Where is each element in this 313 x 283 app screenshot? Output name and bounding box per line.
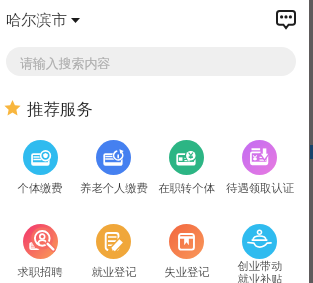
staticText: 请输入搜索内容: [20, 56, 111, 72]
staticText: 求职招聘: [17, 265, 63, 279]
staticText: 个体缴费: [17, 181, 63, 195]
staticText: 养老个人缴费: [80, 181, 148, 195]
staticText: 失业登记: [164, 265, 210, 279]
staticText: 创业带动 就业补贴: [237, 259, 283, 283]
button[interactable]: 失业登记: [150, 224, 223, 279]
button[interactable]: 在职转个体: [150, 140, 223, 195]
staticText: 哈尔滨市: [6, 10, 67, 28]
staticText: 待遇领取认证: [226, 181, 294, 195]
button[interactable]: 创业带动 就业补贴: [223, 224, 296, 283]
staticText: 在职转个体: [158, 181, 215, 195]
staticText: 推荐服务: [27, 99, 93, 117]
button[interactable]: 就业登记: [77, 224, 150, 279]
button[interactable]: 请输入搜索内容: [6, 47, 296, 76]
button[interactable]: 个体缴费: [3, 140, 77, 195]
button[interactable]: 推荐服务: [4, 99, 93, 117]
button[interactable]: 待遇领取认证: [223, 140, 296, 195]
button[interactable]: 哈尔滨市: [6, 10, 80, 28]
staticText: 就业登记: [91, 265, 137, 279]
button[interactable]: 养老个人缴费: [77, 140, 150, 195]
button[interactable]: 求职招聘: [3, 224, 77, 279]
button[interactable]: Messages: [274, 7, 298, 31]
